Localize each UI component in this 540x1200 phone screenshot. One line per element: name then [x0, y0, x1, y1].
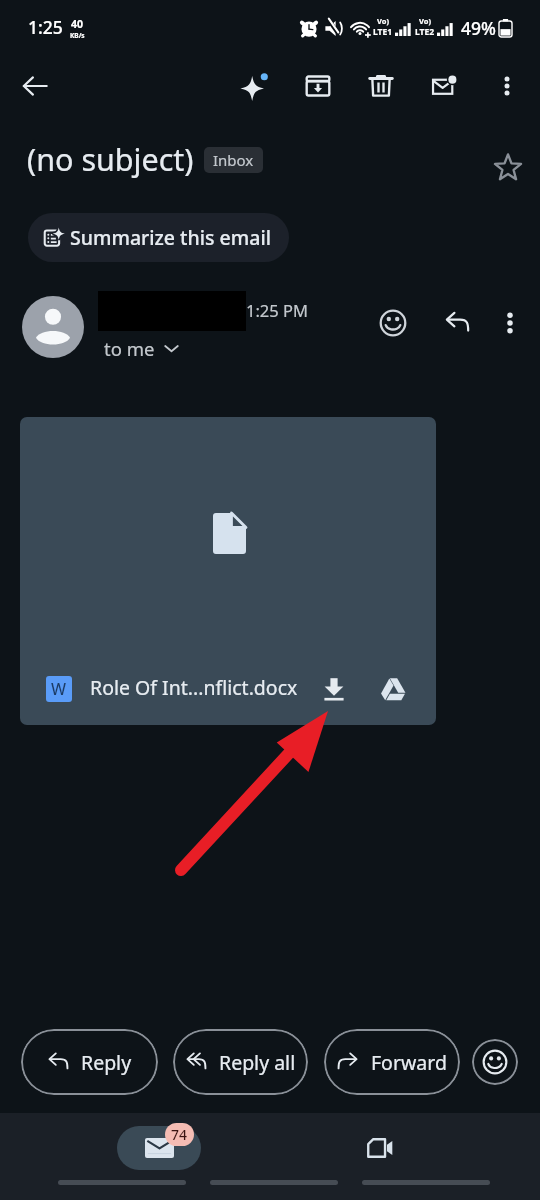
staticText: Role Of Int...nflict.docx: [90, 674, 298, 701]
button[interactable]: Reply all: [173, 1029, 308, 1095]
staticText: KB/s: [70, 31, 85, 40]
button[interactable]: Meet: [355, 1126, 405, 1170]
button[interactable]: Mark as unread: [419, 60, 471, 112]
staticText: Forward: [371, 1049, 447, 1076]
staticText: Inbox: [213, 150, 254, 170]
button[interactable]: Summarize this email: [28, 213, 289, 262]
button[interactable]: Message options: [489, 302, 531, 344]
staticText: Vo): [377, 16, 389, 26]
button[interactable]: Delete: [355, 60, 407, 112]
button[interactable]: Back: [9, 60, 61, 112]
button[interactable]: Download attachment: [314, 669, 354, 709]
staticText: Vo): [419, 16, 431, 26]
staticText: Reply all: [219, 1049, 296, 1076]
button[interactable]: to me: [100, 334, 183, 363]
staticText: 49%: [461, 16, 496, 40]
staticText: to me: [104, 336, 155, 361]
staticText: Summarize this email: [70, 224, 271, 251]
button[interactable]: Archive: [292, 60, 344, 112]
staticText: LTE1: [373, 26, 393, 38]
button[interactable]: Star: [485, 144, 531, 190]
button[interactable]: Attachment preview: [20, 417, 436, 725]
staticText: W: [51, 678, 67, 700]
staticText: Reply: [81, 1049, 132, 1076]
button[interactable]: React with emoji: [472, 1039, 518, 1085]
staticText: (no subject): [27, 138, 194, 180]
button[interactable]: Save to Drive: [373, 669, 413, 709]
button[interactable]: Mail, 74 unread: [117, 1126, 201, 1170]
staticText: 40: [71, 17, 84, 31]
staticText: 1:25 PM: [246, 299, 308, 321]
button[interactable]: React with emoji: [371, 301, 415, 345]
button[interactable]: More options: [482, 61, 532, 111]
button[interactable]: Reply: [435, 301, 479, 345]
staticText: LTE2: [415, 26, 435, 38]
button[interactable]: Reply: [21, 1029, 158, 1095]
button[interactable]: Summarize with Gemini: [229, 60, 281, 112]
button[interactable]: Sender photo: [22, 296, 84, 358]
staticText: 74: [171, 1125, 188, 1144]
staticText: 1:25: [28, 15, 63, 39]
button[interactable]: Inbox: [204, 147, 263, 173]
button[interactable]: Forward: [324, 1029, 460, 1095]
